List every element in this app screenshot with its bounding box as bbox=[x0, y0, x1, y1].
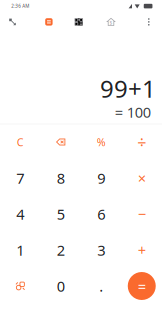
staticText: × bbox=[138, 168, 146, 188]
staticText: $ bbox=[109, 20, 112, 26]
staticText: 2 bbox=[57, 240, 65, 260]
staticText: 6 bbox=[97, 204, 105, 224]
button[interactable]: C bbox=[0, 124, 40, 160]
button[interactable]: 0 bbox=[40, 268, 81, 304]
button[interactable]: Equals bbox=[121, 268, 162, 304]
button[interactable]: 7 bbox=[0, 160, 40, 196]
staticText: 99+1 bbox=[100, 73, 156, 104]
button[interactable]: Delete bbox=[40, 124, 81, 160]
staticText: − bbox=[138, 204, 146, 224]
button[interactable]: 8 bbox=[40, 160, 81, 196]
staticText: 9 bbox=[97, 168, 105, 188]
button[interactable]: More options bbox=[145, 18, 153, 26]
staticText: 3 bbox=[97, 240, 105, 260]
staticText: ÷ bbox=[137, 131, 146, 153]
button[interactable]: . bbox=[81, 268, 121, 304]
button[interactable]: × bbox=[121, 160, 162, 196]
staticText: 8 bbox=[57, 168, 65, 188]
staticText: 7 bbox=[16, 168, 24, 188]
staticText: 5 bbox=[57, 204, 65, 224]
staticText: C bbox=[17, 135, 24, 149]
staticText: 0 bbox=[57, 276, 65, 296]
button[interactable]: 5 bbox=[40, 196, 81, 232]
button[interactable]: 2 bbox=[40, 232, 81, 268]
staticText: 4 bbox=[16, 204, 24, 224]
button[interactable]: Mortgage calculator bbox=[107, 18, 115, 26]
staticText: 1 bbox=[16, 240, 24, 260]
button[interactable]: − bbox=[121, 196, 162, 232]
button[interactable]: % bbox=[81, 124, 121, 160]
button[interactable]: 3 bbox=[81, 232, 121, 268]
button[interactable]: 6 bbox=[81, 196, 121, 232]
staticText: = bbox=[138, 276, 146, 296]
staticText: % bbox=[97, 135, 106, 149]
button[interactable]: 9 bbox=[81, 160, 121, 196]
staticText: 2:36 AM bbox=[11, 3, 29, 9]
button[interactable]: + bbox=[121, 232, 162, 268]
button[interactable]: Collapse bbox=[9, 19, 16, 25]
button[interactable]: Calculator bbox=[44, 17, 53, 26]
staticText: + bbox=[138, 240, 146, 260]
button[interactable]: 1 bbox=[0, 232, 40, 268]
button[interactable]: ÷ bbox=[121, 124, 162, 160]
staticText: = 100 bbox=[115, 102, 151, 122]
button[interactable]: Scientific functions bbox=[0, 268, 40, 304]
button[interactable]: 4 bbox=[0, 196, 40, 232]
button[interactable]: Unit converter bbox=[75, 18, 83, 25]
staticText: . bbox=[99, 276, 103, 296]
